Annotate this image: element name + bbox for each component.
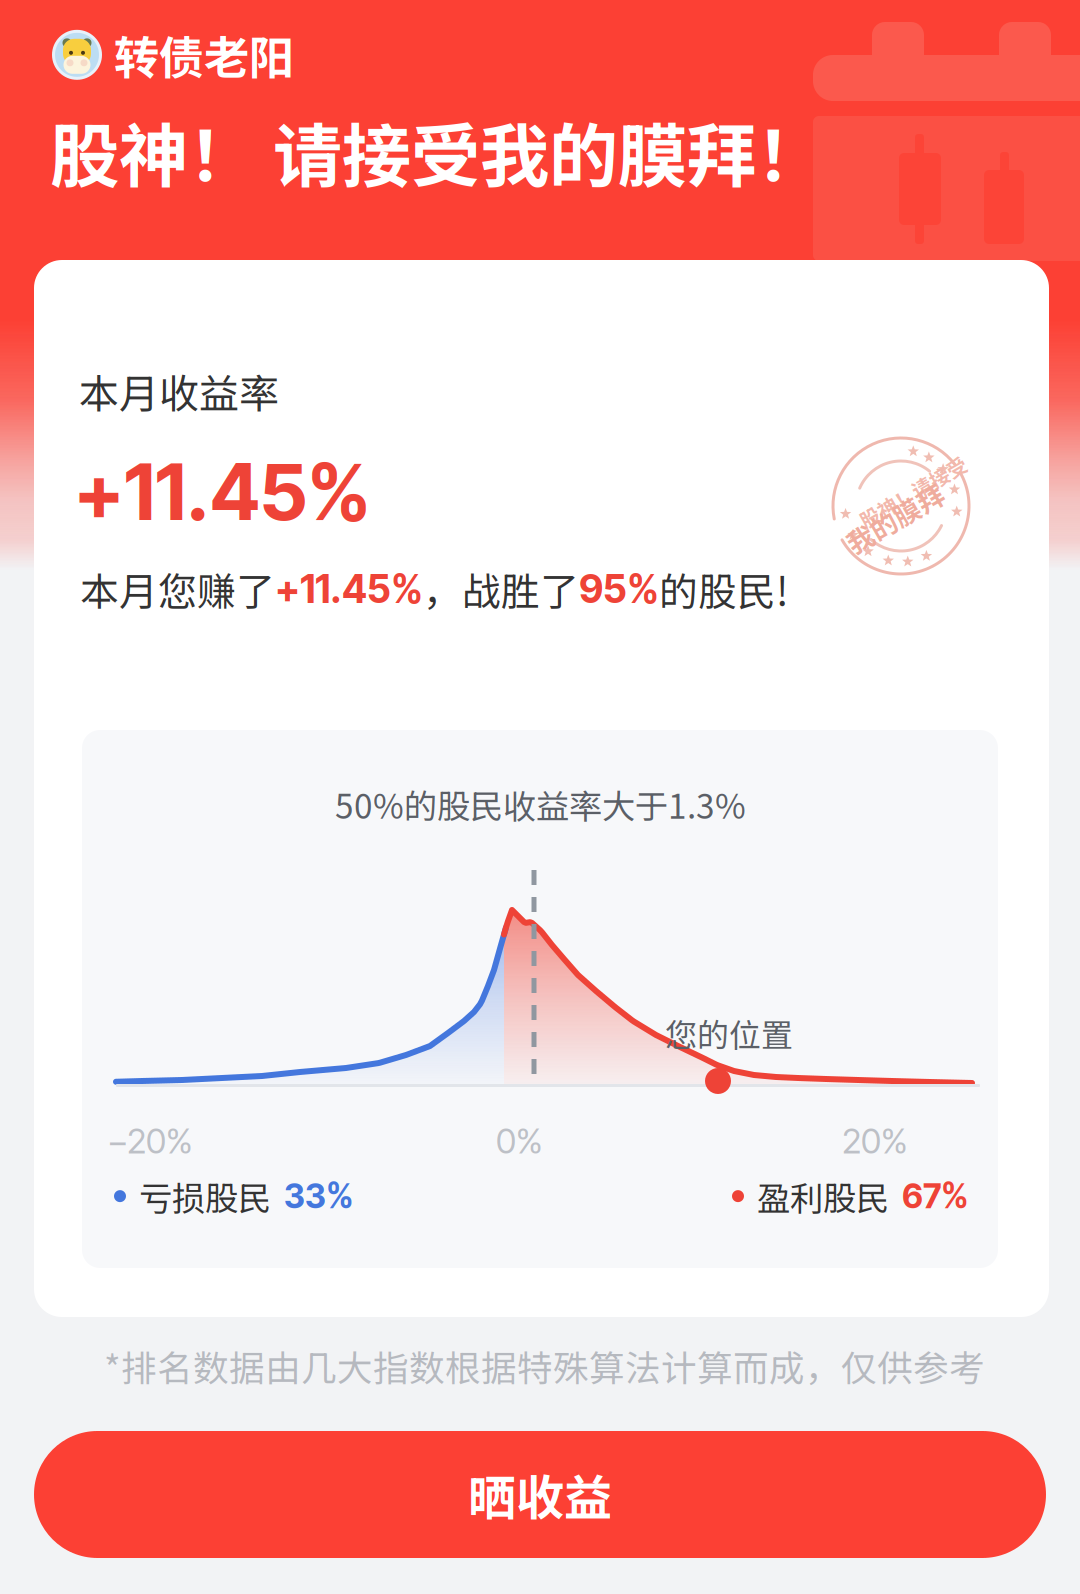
staticText: 本月收益率 xyxy=(79,362,279,420)
staticText: 的股民! xyxy=(659,561,788,617)
staticText: 50%的股民收益率大于1.3% xyxy=(335,780,746,828)
staticText: 股神！请接受 xyxy=(853,477,973,506)
button[interactable]: 晒收益 xyxy=(34,1431,1046,1558)
staticText: *排名数据由几大指数根据特殊算法计算而成，仅供参考 xyxy=(104,1340,985,1391)
staticText: 33% xyxy=(284,1176,354,1216)
staticText: 67% xyxy=(902,1176,969,1216)
staticText: 您的位置 xyxy=(665,1010,793,1056)
staticText: 20% xyxy=(842,1120,908,1162)
staticText: 0% xyxy=(496,1120,543,1162)
staticText: 转债老阳 xyxy=(114,22,294,88)
staticText: 盈利股民 xyxy=(757,1172,889,1220)
staticText: 我的膜拜 xyxy=(841,499,949,537)
staticText: 本月您赚了 xyxy=(80,561,275,617)
staticText: +11.45% xyxy=(74,445,371,539)
staticText: 95% xyxy=(579,566,659,612)
button[interactable]: 转债老阳 xyxy=(52,22,294,88)
staticText: −20% xyxy=(107,1120,193,1162)
staticText: ，战胜了 xyxy=(423,561,579,617)
staticText: +11.45% xyxy=(275,566,423,612)
staticText: 晒收益 xyxy=(468,1460,612,1529)
staticText: 亏损股民 xyxy=(139,1172,271,1220)
staticText: 股神！ 请接受我的膜拜！ xyxy=(50,101,825,201)
